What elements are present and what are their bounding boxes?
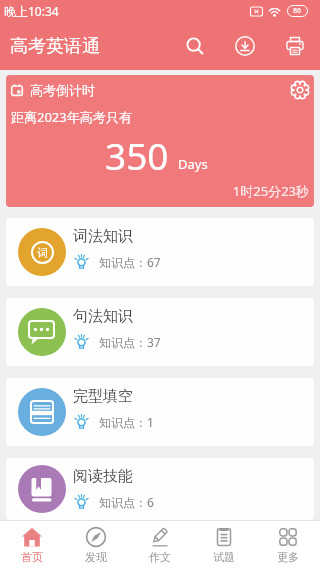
button[interactable]: 词 — [6, 218, 314, 286]
staticText: 距离2023年高考只有 — [11, 108, 132, 126]
staticText: 知识点：1 — [99, 414, 154, 430]
staticText: 86 — [293, 6, 302, 16]
button[interactable]: 首页 — [0, 521, 64, 568]
button[interactable]: 更多 — [256, 521, 320, 568]
button[interactable]: 试题 — [192, 521, 256, 568]
staticText: 知识点：37 — [99, 334, 161, 350]
staticText: 作文 — [149, 550, 171, 564]
staticText: 词法知识 — [73, 227, 133, 246]
staticText: 知识点：6 — [99, 494, 154, 510]
button[interactable]: 发现 — [64, 521, 128, 568]
staticText: 试题 — [213, 550, 235, 564]
staticText: 高考倒计时 — [30, 82, 95, 98]
button[interactable]: 句法知识 — [6, 298, 314, 366]
staticText: 发现 — [85, 550, 107, 564]
staticText: 高考英语通 — [10, 35, 100, 58]
staticText: 首页 — [21, 550, 43, 564]
button[interactable]: 阅读技能 — [6, 458, 314, 520]
button[interactable] — [270, 22, 320, 70]
button[interactable] — [220, 22, 270, 70]
staticText: 1时25分23秒 — [11, 182, 309, 200]
button[interactable]: 高考倒计时 — [6, 75, 314, 207]
staticText: 更多 — [277, 550, 299, 564]
staticText: 350 — [105, 130, 169, 180]
button[interactable] — [170, 22, 220, 70]
staticText: 完型填空 — [73, 387, 133, 406]
staticText: 晚上10:34 — [4, 3, 59, 19]
button[interactable] — [289, 79, 311, 101]
staticText: 句法知识 — [73, 307, 133, 326]
staticText: 知识点：67 — [99, 254, 161, 270]
staticText: Days — [178, 155, 208, 173]
button[interactable]: 完型填空 — [6, 378, 314, 446]
staticText: 阅读技能 — [73, 467, 133, 486]
staticText: 词 — [37, 246, 48, 260]
button[interactable]: 作文 — [128, 521, 192, 568]
